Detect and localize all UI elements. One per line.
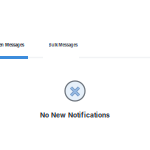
- button[interactable]: Bulk Messages: [43, 34, 79, 59]
- staticText: Open Messages: [0, 42, 24, 47]
- staticText: Bulk Messages: [48, 42, 77, 47]
- button[interactable]: Open Messages: [0, 34, 28, 59]
- staticText: No New Notifications: [40, 111, 110, 119]
